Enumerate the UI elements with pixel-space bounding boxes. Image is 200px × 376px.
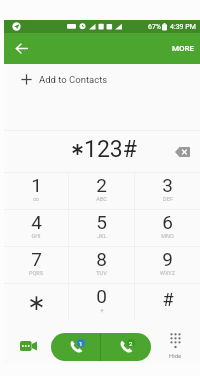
staticText: 4:39 PM [170, 23, 196, 31]
staticText: PQRS [29, 270, 43, 276]
staticText: ∗ [27, 290, 46, 316]
staticText: 123# [84, 136, 137, 163]
staticText: 7 [31, 248, 42, 270]
button[interactable]: 3 [135, 173, 200, 209]
button[interactable]: Back [10, 37, 33, 60]
button[interactable]: Backspace [171, 141, 193, 163]
staticText: WXYZ [160, 270, 175, 276]
button[interactable]: 8 [69, 247, 134, 283]
button[interactable]: 2 [69, 173, 134, 209]
button[interactable]: Add to Contacts [4, 64, 200, 95]
staticText: ABC [96, 196, 107, 202]
button[interactable]: Video call [16, 334, 40, 358]
button[interactable]: 0 [69, 284, 134, 320]
staticText: 6 [162, 211, 173, 233]
staticText: ∞ [33, 196, 39, 202]
staticText: TUV [96, 270, 107, 276]
staticText: 5 [96, 211, 107, 233]
staticText: # [162, 289, 174, 310]
staticText: + [100, 307, 104, 313]
staticText: 67% [148, 23, 161, 31]
button[interactable]: 1 [4, 173, 68, 209]
staticText: Hide [169, 352, 182, 359]
button[interactable]: 7 [4, 247, 68, 283]
staticText: DEF [163, 196, 173, 202]
button[interactable]: Hide keypad [163, 330, 188, 360]
button[interactable]: 5 [69, 210, 134, 246]
staticText: 1 [79, 340, 83, 347]
button[interactable]: 4 [4, 210, 68, 246]
staticText: 1 [31, 174, 42, 196]
button[interactable]: MORE [167, 36, 200, 61]
button[interactable]: ∗ [4, 284, 68, 320]
button[interactable]: Call with SIM 1 [51, 333, 100, 361]
staticText: 8 [96, 248, 107, 270]
staticText: 0 [96, 285, 107, 307]
staticText: 9 [162, 248, 173, 270]
button[interactable]: 6 [135, 210, 200, 246]
staticText: 2 [96, 174, 107, 196]
staticText: MNO [161, 233, 174, 239]
staticText: JKL [97, 233, 107, 239]
staticText: MORE [172, 44, 195, 53]
button[interactable]: Call with SIM 2 [101, 333, 151, 361]
button[interactable]: # [135, 284, 200, 320]
staticText: 2 [129, 340, 133, 347]
button[interactable]: 9 [135, 247, 200, 283]
staticText: 4 [31, 211, 42, 233]
staticText: 3 [162, 174, 173, 196]
staticText: Add to Contacts [39, 74, 108, 85]
staticText: GHI [31, 233, 41, 239]
